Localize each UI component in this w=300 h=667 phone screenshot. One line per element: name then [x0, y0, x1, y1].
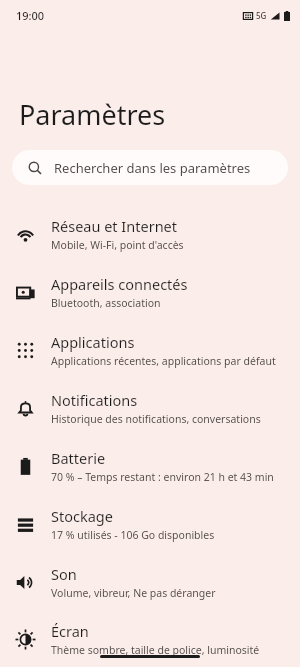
button[interactable]: Appareils connectés	[0, 263, 300, 321]
staticText: Volume, vibreur, Ne pas déranger	[51, 586, 216, 600]
other: Son	[16, 573, 35, 592]
button[interactable]: Réseau et Internet	[0, 205, 300, 263]
other: Stockage	[16, 515, 35, 534]
staticText: Rechercher dans les paramètres	[54, 159, 251, 177]
staticText: Batterie	[51, 448, 106, 468]
staticText: 19:00	[16, 8, 45, 23]
staticText: Applications récentes, applications par …	[51, 354, 276, 368]
button[interactable]: Applications	[0, 321, 300, 379]
button[interactable]: Rechercher dans les paramètres	[12, 150, 288, 185]
other: Écran	[16, 630, 35, 649]
staticText: Stockage	[51, 506, 113, 526]
other: Applications	[16, 341, 35, 360]
other: Réseau et Internet	[16, 225, 35, 244]
staticText: 17 % utilisés - 106 Go disponibles	[51, 528, 215, 542]
staticText: Applications	[51, 332, 135, 352]
other: Batterie	[16, 457, 35, 476]
staticText: Son	[51, 564, 77, 584]
staticText: Thème sombre, taille de police, luminosi…	[51, 643, 260, 657]
button[interactable]: Son	[0, 553, 300, 611]
other: Notifications	[16, 399, 35, 418]
staticText: Bluetooth, association	[51, 296, 161, 310]
button[interactable]: Écran	[0, 611, 300, 667]
staticText: Mobile, Wi-Fi, point d'accès	[51, 238, 184, 252]
button[interactable]: Notifications	[0, 379, 300, 437]
other: Appareils connectés	[16, 283, 35, 302]
staticText: Paramètres	[19, 96, 166, 133]
staticText: 5G	[256, 10, 267, 21]
staticText: 70 % – Temps restant : environ 21 h et 4…	[51, 470, 274, 484]
staticText: Appareils connectés	[51, 274, 188, 294]
button[interactable]: Batterie	[0, 437, 300, 495]
staticText: Notifications	[51, 390, 138, 410]
staticText: Écran	[51, 621, 89, 641]
staticText: Réseau et Internet	[51, 216, 178, 236]
button[interactable]: Stockage	[0, 495, 300, 553]
staticText: Historique des notifications, conversati…	[51, 412, 261, 426]
